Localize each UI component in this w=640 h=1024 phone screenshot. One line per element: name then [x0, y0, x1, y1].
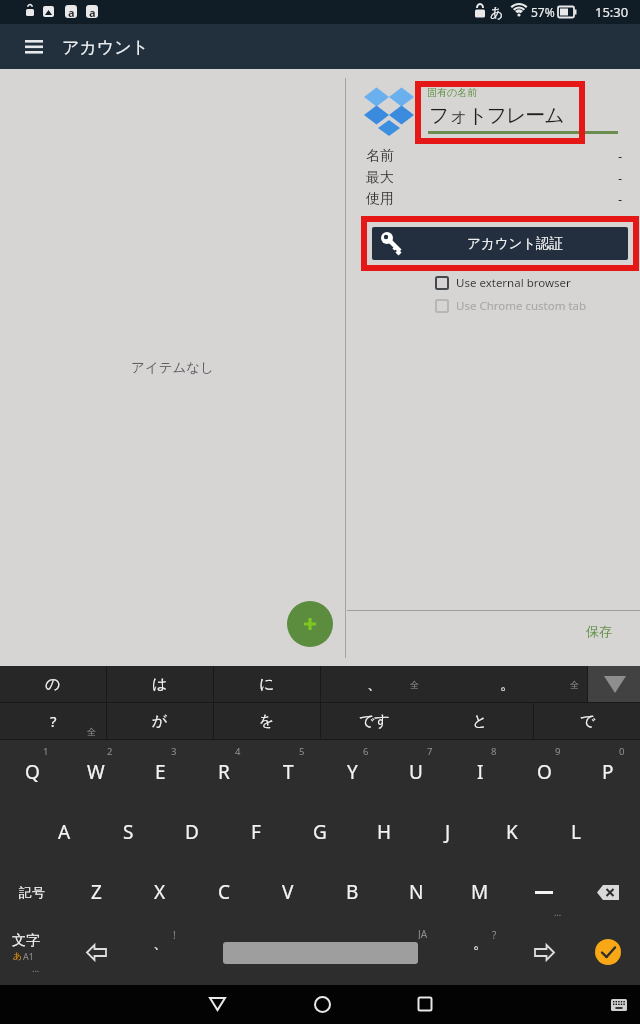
button[interactable] — [577, 924, 639, 980]
staticText: は — [152, 675, 168, 694]
staticText: アカウント — [62, 37, 149, 58]
staticText: E — [155, 759, 166, 785]
button[interactable]: Q — [1, 744, 63, 800]
button[interactable]: V — [257, 864, 319, 920]
staticText: 2 — [107, 745, 113, 758]
button[interactable]: G — [289, 804, 351, 860]
button[interactable] — [193, 987, 241, 1021]
button[interactable]: が — [107, 703, 213, 739]
staticText: 7 — [427, 745, 433, 758]
button[interactable]: R — [193, 744, 255, 800]
button[interactable]: は — [107, 666, 213, 702]
button[interactable]: Use Chrome custom tab — [434, 298, 609, 314]
button[interactable]: フォトフレーム — [429, 100, 619, 130]
button[interactable]: I — [449, 744, 511, 800]
button[interactable]: ? — [0, 703, 106, 739]
staticText: a — [68, 5, 75, 19]
button[interactable]: 。 — [449, 928, 511, 958]
staticText: アカウント認証 — [467, 235, 564, 252]
staticText: 名前 — [366, 147, 394, 164]
staticText: N — [409, 879, 424, 905]
staticText: ? — [50, 711, 57, 731]
staticText: が — [152, 712, 168, 731]
staticText: 、 — [153, 934, 168, 953]
button[interactable]: に — [214, 666, 320, 702]
staticText: 。 — [500, 675, 515, 694]
button[interactable]: D — [161, 804, 223, 860]
button[interactable]: を — [214, 703, 320, 739]
staticText: 6 — [363, 745, 369, 758]
button[interactable] — [513, 864, 575, 920]
staticText: - — [618, 147, 623, 164]
staticText: K — [506, 819, 518, 845]
button[interactable]: S — [97, 804, 159, 860]
staticText: T — [283, 759, 294, 785]
button[interactable]: T — [257, 744, 319, 800]
button[interactable] — [513, 924, 575, 980]
button[interactable]: 。 — [427, 666, 587, 702]
button[interactable]: B — [321, 864, 383, 920]
button[interactable]: Y — [321, 744, 383, 800]
button[interactable] — [588, 666, 640, 702]
button[interactable]: L — [545, 804, 607, 860]
staticText: 4 — [235, 745, 241, 758]
button[interactable] — [577, 864, 639, 920]
button[interactable] — [604, 993, 634, 1017]
button[interactable]: W — [65, 744, 127, 800]
staticText: L — [571, 819, 581, 845]
staticText: I — [477, 759, 484, 785]
button[interactable]: Z — [65, 864, 127, 920]
staticText: W — [87, 759, 105, 785]
button[interactable]: 記号 — [1, 864, 63, 920]
button[interactable] — [401, 987, 449, 1021]
staticText: あ — [13, 950, 23, 961]
staticText: R — [218, 759, 230, 785]
staticText: Q — [25, 759, 40, 785]
button[interactable]: H — [353, 804, 415, 860]
button[interactable]: 文字 — [2, 924, 62, 980]
button[interactable] — [16, 30, 52, 64]
button[interactable]: C — [193, 864, 255, 920]
button[interactable]: X — [129, 864, 191, 920]
staticText: B — [346, 879, 359, 905]
button[interactable]: K — [481, 804, 543, 860]
button[interactable]: F — [225, 804, 287, 860]
button[interactable]: N — [385, 864, 447, 920]
button[interactable]: 、 — [321, 666, 427, 702]
button[interactable]: と — [427, 703, 533, 739]
staticText: アイテムなし — [131, 359, 214, 376]
button[interactable] — [298, 987, 346, 1021]
button[interactable]: 、 — [129, 928, 191, 958]
staticText: 。 — [473, 934, 488, 953]
staticText: V — [282, 879, 294, 905]
button[interactable]: の — [0, 666, 106, 702]
button[interactable]: で — [534, 703, 640, 739]
button[interactable]: です — [321, 703, 427, 739]
button[interactable]: P — [577, 744, 639, 800]
button[interactable]: 保存 — [562, 620, 612, 642]
staticText: D — [185, 819, 199, 845]
button[interactable] — [65, 924, 127, 980]
staticText: 57% — [531, 4, 555, 20]
staticText: ! — [173, 928, 176, 940]
staticText: a — [89, 5, 96, 19]
staticText: Y — [347, 759, 358, 785]
staticText: Use external browser — [456, 275, 571, 291]
staticText: A1 — [23, 950, 34, 962]
button[interactable]: A — [33, 804, 95, 860]
button[interactable]: J — [417, 804, 479, 860]
staticText: に — [259, 675, 275, 694]
button[interactable] — [287, 601, 333, 647]
staticText: 保存 — [586, 623, 612, 639]
button[interactable]: Use external browser — [434, 275, 584, 291]
button[interactable] — [223, 942, 418, 964]
button[interactable]: M — [449, 864, 511, 920]
button[interactable]: O — [513, 744, 575, 800]
staticText: と — [472, 712, 488, 731]
button[interactable]: U — [385, 744, 447, 800]
staticText: - — [618, 169, 623, 186]
button[interactable]: E — [129, 744, 191, 800]
button[interactable]: アカウント認証 — [372, 227, 628, 260]
staticText: J — [445, 819, 451, 845]
staticText: S — [123, 819, 134, 845]
